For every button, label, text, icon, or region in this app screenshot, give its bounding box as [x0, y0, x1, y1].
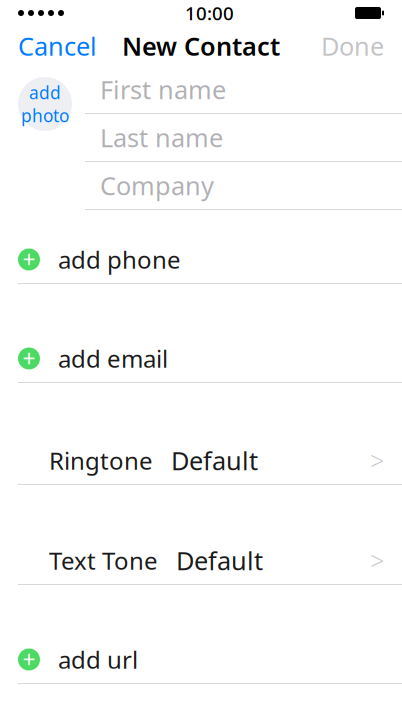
button[interactable]: + [0, 335, 402, 382]
staticText: 10:00 [185, 1, 234, 25]
staticText: Done [321, 29, 384, 63]
staticText: add email [58, 343, 168, 374]
button[interactable]: Cancel [0, 26, 115, 66]
staticText: Ringtone [49, 445, 153, 476]
staticText: > [370, 544, 384, 577]
button[interactable]: Ringtone [0, 437, 402, 484]
staticText: + [22, 644, 35, 674]
staticText: Cancel [18, 29, 97, 63]
staticText: Company [100, 169, 214, 202]
staticText: Default [171, 444, 258, 477]
button[interactable]: add [18, 77, 72, 131]
staticText: Default [176, 544, 263, 577]
button[interactable]: Done [303, 26, 402, 66]
staticText: + [22, 343, 35, 373]
staticText: New Contact [122, 29, 280, 63]
button[interactable]: + [0, 636, 402, 683]
button[interactable]: Text Tone [0, 537, 402, 584]
staticText: Text Tone [49, 545, 158, 576]
staticText: + [22, 244, 35, 274]
button[interactable]: + [0, 236, 402, 283]
staticText: > [370, 444, 384, 477]
staticText: add url [58, 644, 138, 675]
staticText: photo [21, 104, 69, 127]
staticText: First name [100, 73, 226, 106]
staticText: Last name [100, 121, 223, 154]
staticText: add [29, 81, 61, 104]
staticText: add phone [58, 244, 181, 275]
